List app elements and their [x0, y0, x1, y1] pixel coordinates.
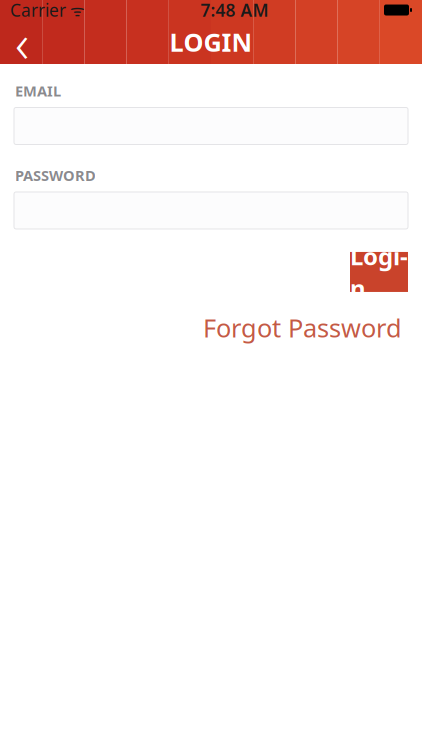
staticText: ᯤ: [66, 0, 85, 21]
staticText: Login: [350, 240, 408, 304]
button[interactable]: Back: [0, 20, 44, 64]
staticText: 7:48 AM: [200, 0, 268, 21]
staticText: Carrier: [10, 0, 66, 21]
staticText: Forgot Password: [203, 311, 402, 345]
button[interactable]: Forgot Password: [203, 311, 402, 345]
staticText: PASSWORD: [15, 165, 96, 185]
staticText: LOGIN: [169, 25, 252, 59]
button[interactable]: Login: [350, 252, 408, 292]
staticText: EMAIL: [15, 81, 61, 100]
staticText: ‹: [15, 7, 29, 77]
